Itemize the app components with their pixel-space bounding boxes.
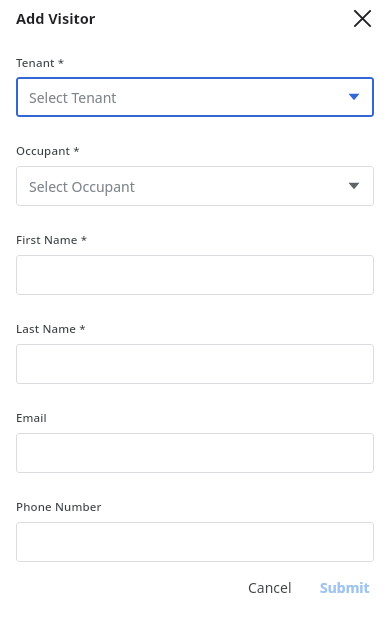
button[interactable] bbox=[16, 344, 374, 384]
button[interactable] bbox=[16, 255, 374, 295]
button[interactable]: Close bbox=[346, 2, 378, 34]
staticText: Select Occupant bbox=[29, 177, 348, 196]
staticText: Last Name * bbox=[16, 321, 86, 337]
button[interactable]: Cancel bbox=[238, 570, 302, 605]
button[interactable] bbox=[16, 522, 374, 562]
staticText: Email bbox=[16, 410, 47, 426]
staticText: Submit bbox=[320, 578, 370, 597]
button[interactable]: Select Occupant bbox=[16, 166, 374, 206]
staticText: Tenant * bbox=[16, 55, 65, 71]
staticText: Add Visitor bbox=[16, 8, 346, 28]
staticText: First Name * bbox=[16, 232, 88, 248]
staticText: Select Tenant bbox=[29, 88, 348, 107]
staticText: Phone Number bbox=[16, 499, 102, 515]
staticText: Cancel bbox=[248, 578, 292, 597]
staticText: Occupant * bbox=[16, 143, 80, 159]
button[interactable]: Select Tenant bbox=[16, 77, 374, 117]
button[interactable] bbox=[16, 433, 374, 473]
button[interactable]: Submit bbox=[316, 570, 374, 605]
